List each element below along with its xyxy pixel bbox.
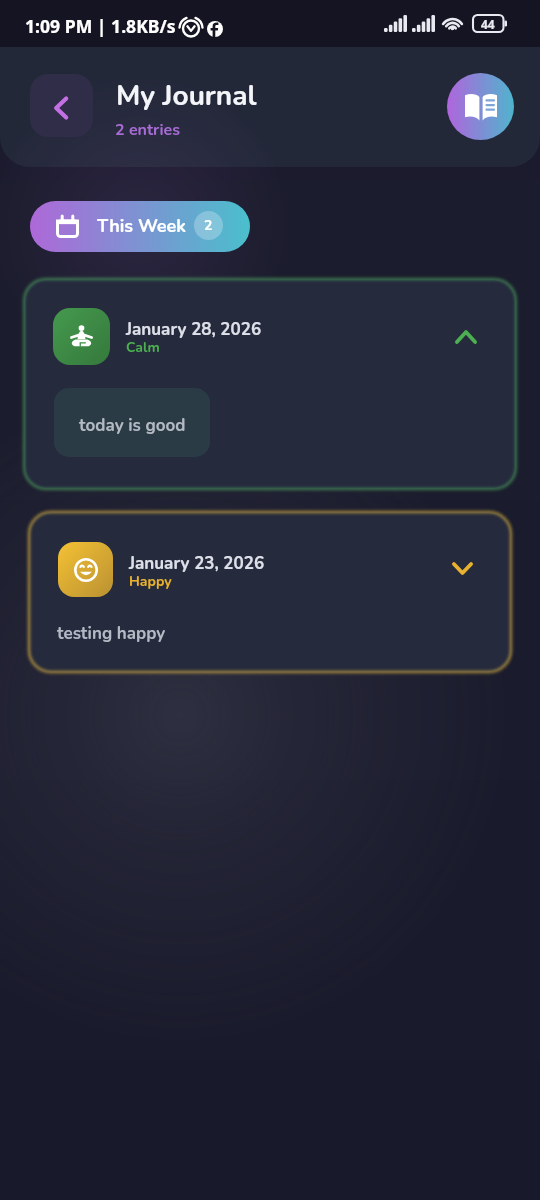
button[interactable]: January 23, 2026 <box>29 512 511 672</box>
staticText: 2 entries <box>115 119 180 141</box>
staticText: January 23, 2026 <box>129 552 265 575</box>
button[interactable]: This Week <box>30 201 250 252</box>
button[interactable]: Open journal <box>447 73 514 140</box>
button[interactable]: Expand entry <box>452 562 473 575</box>
button[interactable]: Back <box>30 74 93 137</box>
staticText: testing happy <box>57 622 166 645</box>
staticText: My Journal <box>116 77 257 115</box>
button[interactable]: Collapse entry <box>455 330 477 344</box>
staticText: today is good <box>79 414 186 437</box>
button[interactable]: January 28, 2026 <box>24 279 516 489</box>
staticText: January 28, 2026 <box>126 318 262 341</box>
staticText: Happy <box>129 572 172 591</box>
staticText: 1:09 PM | 1.8KB/s <box>25 14 176 38</box>
staticText: Calm <box>126 338 160 357</box>
staticText: 44 <box>481 16 495 32</box>
staticText: 2 <box>204 216 213 235</box>
staticText: This Week <box>97 214 187 239</box>
